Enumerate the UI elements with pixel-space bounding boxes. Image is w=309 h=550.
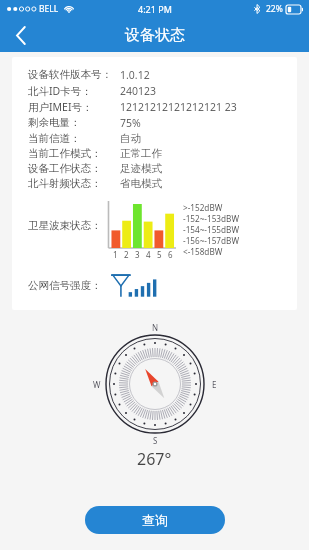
staticText: E [212,379,217,390]
staticText: 设备工作状态： [28,162,114,175]
staticText: 卫星波束状态： [28,219,102,232]
staticText: 2 [124,249,129,260]
staticText: W [93,379,101,390]
staticText: 240123 [120,84,157,98]
staticText: 公网信号强度： [28,279,102,292]
staticText: 6 [168,249,173,260]
staticText: 267° [137,448,172,470]
staticText: 1.0.12 [120,68,150,82]
staticText: 剩余电量： [28,116,114,129]
staticText: 查询 [142,512,168,528]
staticText: -154~-155dBW [183,224,240,235]
staticText: S [153,435,158,446]
button[interactable]: Back [0,18,42,52]
staticText: 足迹模式 [120,162,162,175]
staticText: >-152dBW [183,202,223,213]
staticText: 用户IMEI号： [28,100,114,114]
staticText: 5 [157,249,162,260]
staticText: 4:21 PM [138,3,172,15]
button[interactable]: 查询 [85,506,225,534]
staticText: BELL [39,3,59,15]
staticText: N [152,322,159,333]
staticText: 北斗射频状态： [28,177,114,190]
staticText: 1 [113,249,118,260]
staticText: 4 [146,249,151,260]
staticText: 正常工作 [120,147,162,160]
staticText: 设备软件版本号： [28,68,114,81]
staticText: 3 [135,249,140,260]
staticText: 自动 [120,132,141,145]
staticText: 当前信道： [28,132,114,145]
staticText: 22% [266,3,283,15]
staticText: -152~-153dBW [183,213,240,224]
staticText: 当前工作模式： [28,147,114,160]
staticText: 北斗ID卡号： [28,84,114,98]
staticText: 75% [120,116,141,130]
staticText: 省电模式 [120,177,162,190]
staticText: 12121212121212121 23 [120,100,237,114]
staticText: <-158dBW [183,246,223,257]
staticText: 设备状态 [125,26,185,45]
staticText: -156~-157dBW [183,235,240,246]
